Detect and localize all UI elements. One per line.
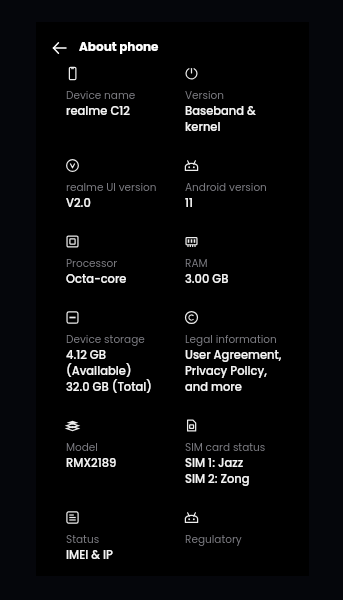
button[interactable]: Device name [36,55,155,131]
button[interactable]: Legal information [155,299,309,407]
staticText: Processor [66,256,118,271]
staticText: Octa-core [66,271,127,287]
staticText: 32.0 GB (Total) [66,379,152,395]
button[interactable]: realme UI version [36,147,155,223]
staticText: kernel [185,119,221,135]
button[interactable]: Back [46,35,72,61]
staticText: About phone [79,38,159,55]
button[interactable]: Processor [36,223,155,299]
staticText: User Agreement, [185,347,282,363]
staticText: SIM 1: Jazz [185,455,244,471]
staticText: (Available) [66,363,132,379]
staticText: Version [185,88,225,103]
button[interactable]: Device storage [36,299,155,407]
staticText: V2.0 [66,195,91,211]
button[interactable]: RAM [155,223,309,299]
staticText: Device storage [66,332,145,347]
button[interactable]: Regulatory [155,499,309,559]
staticText: Android version [185,180,267,195]
staticText: Status [66,532,100,547]
staticText: Model [66,440,98,455]
staticText: and more [185,379,242,395]
button[interactable]: Version [155,55,309,147]
staticText: realme UI version [66,180,155,195]
staticText: 4.12 GB [66,347,106,363]
button[interactable]: Model [36,407,155,483]
staticText: 11 [185,195,194,211]
button[interactable]: Android version [155,147,309,223]
staticText: Regulatory [185,532,242,547]
staticText: realme C12 [66,103,130,119]
staticText: SIM 2: Zong [185,471,250,487]
staticText: 3.00 GB [185,271,229,287]
button[interactable]: Status [36,499,155,575]
staticText: Baseband & [185,103,256,119]
staticText: Legal information [185,332,277,347]
staticText: Device name [66,88,136,103]
button[interactable]: SIM card status [155,407,309,499]
staticText: RMX2189 [66,455,117,471]
staticText: RAM [185,256,208,271]
staticText: IMEI & IP [66,547,113,563]
staticText: SIM card status [185,440,266,455]
staticText: Privacy Policy, [185,363,267,379]
